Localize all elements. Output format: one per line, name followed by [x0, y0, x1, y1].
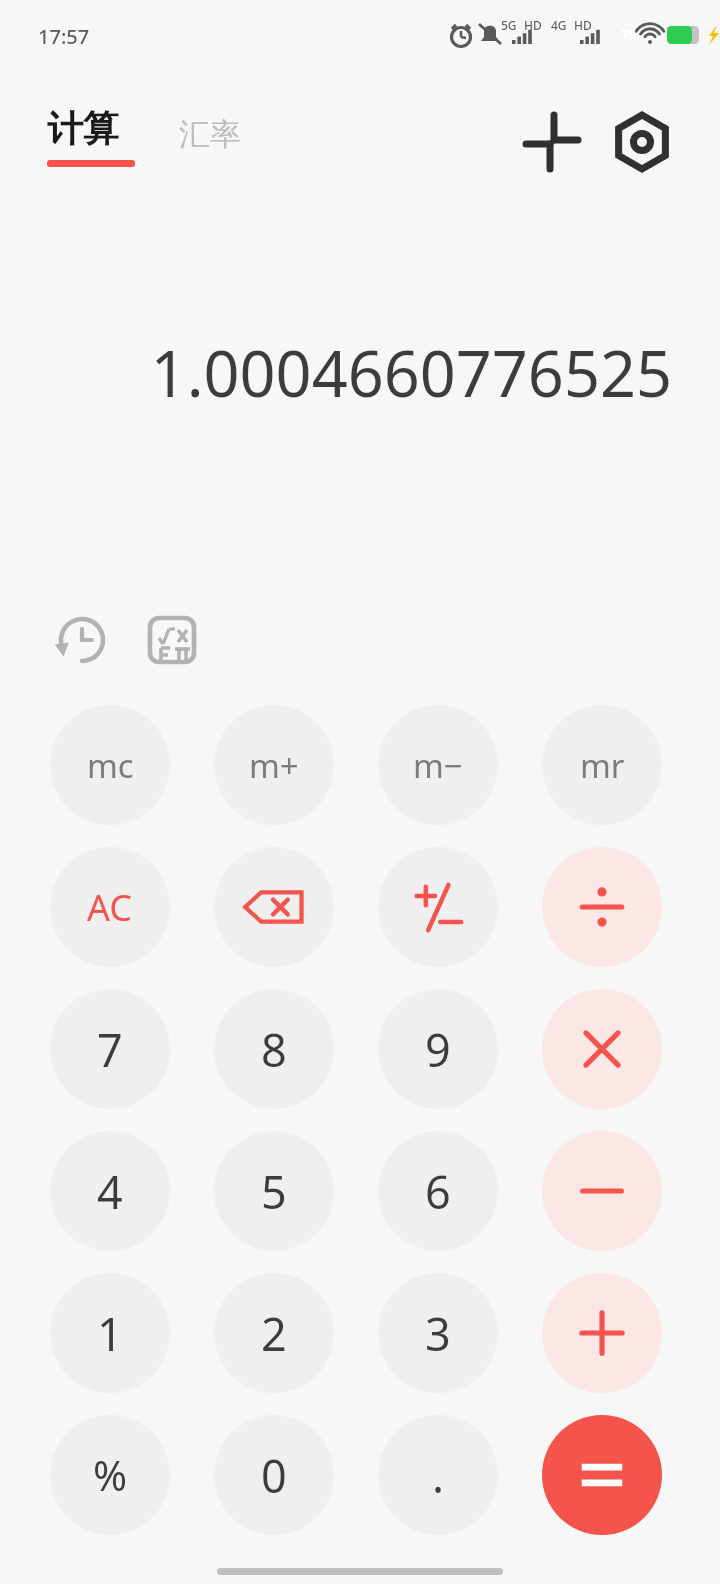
button[interactable]: Toggle sign: [378, 847, 498, 967]
button[interactable]: 2: [214, 1273, 334, 1393]
staticText: 计算: [47, 106, 119, 151]
staticText: AC: [87, 883, 133, 932]
staticText: 汇率: [179, 115, 241, 154]
button[interactable]: 汇率: [174, 112, 246, 157]
button[interactable]: 4: [50, 1131, 170, 1251]
button[interactable]: Scientific mode: [142, 610, 202, 670]
button[interactable]: AC: [50, 847, 170, 967]
button[interactable]: 3: [378, 1273, 498, 1393]
button[interactable]: .: [378, 1415, 498, 1535]
button[interactable]: Settings: [606, 106, 678, 178]
staticText: 7: [97, 1019, 123, 1080]
staticText: 3: [425, 1303, 451, 1364]
staticText: 5: [261, 1161, 287, 1222]
button[interactable]: History: [52, 610, 112, 670]
button[interactable]: 8: [214, 989, 334, 1109]
staticText: 6: [425, 1161, 451, 1222]
button[interactable]: 6: [378, 1131, 498, 1251]
button[interactable]: mr: [542, 705, 662, 825]
staticText: %: [93, 1447, 128, 1503]
button[interactable]: 计算: [44, 106, 138, 167]
button[interactable]: 0: [214, 1415, 334, 1535]
staticText: HD: [574, 17, 592, 33]
button[interactable]: Minus: [542, 1131, 662, 1251]
staticText: 2: [261, 1303, 287, 1364]
staticText: HD: [524, 17, 542, 33]
staticText: 4G: [551, 17, 567, 33]
staticText: 1: [97, 1303, 123, 1364]
staticText: m+: [249, 743, 299, 788]
staticText: m−: [413, 743, 463, 788]
button[interactable]: 9: [378, 989, 498, 1109]
button[interactable]: Plus: [542, 1273, 662, 1393]
staticText: 9: [425, 1019, 451, 1080]
staticText: 5G: [501, 17, 517, 33]
staticText: 0: [261, 1445, 287, 1506]
button[interactable]: 7: [50, 989, 170, 1109]
button[interactable]: m−: [378, 705, 498, 825]
staticText: .: [432, 1445, 445, 1506]
staticText: mc: [87, 743, 134, 788]
button[interactable]: Unit converter: [516, 106, 588, 178]
button[interactable]: 1: [50, 1273, 170, 1393]
staticText: 4: [97, 1161, 123, 1222]
staticText: 1.0004660776525: [150, 330, 672, 416]
button[interactable]: Multiply: [542, 989, 662, 1109]
button[interactable]: Backspace: [214, 847, 334, 967]
staticText: 8: [261, 1019, 287, 1080]
button[interactable]: Divide: [542, 847, 662, 967]
staticText: 75: [621, 25, 636, 43]
button[interactable]: mc: [50, 705, 170, 825]
staticText: 17:57: [38, 23, 90, 50]
button[interactable]: %: [50, 1415, 170, 1535]
button[interactable]: 5: [214, 1131, 334, 1251]
button[interactable]: m+: [214, 705, 334, 825]
button[interactable]: Equals: [542, 1415, 662, 1535]
staticText: mr: [580, 743, 625, 788]
